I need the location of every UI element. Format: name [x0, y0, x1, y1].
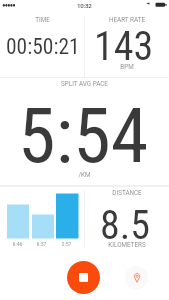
staticText: /KM	[78, 171, 91, 178]
staticText: HEART RATE	[109, 16, 145, 23]
staticText: 5:54	[18, 91, 149, 180]
staticText: 00:50:21	[6, 34, 80, 59]
staticText: 6:37	[36, 241, 47, 247]
staticText: DISTANCE	[112, 189, 142, 196]
staticText: 10:32	[77, 2, 92, 9]
staticText: 8.5	[100, 202, 151, 249]
staticText: BPM	[120, 63, 134, 70]
staticText: KILOMETERS	[108, 241, 146, 248]
staticText: TIME	[35, 16, 50, 23]
button[interactable]: Location	[125, 266, 148, 289]
staticText: 143	[94, 23, 154, 70]
staticText: SPLIT AVG PACE	[61, 80, 108, 87]
button[interactable]: Stop workout	[67, 261, 100, 294]
staticText: 2:57	[61, 241, 72, 247]
staticText: 6:46	[12, 241, 23, 247]
